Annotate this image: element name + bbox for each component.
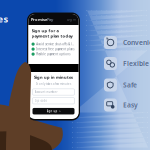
staticText: It only takes a few minutes xyxy=(36,82,71,86)
button[interactable]: Easy xyxy=(104,98,150,112)
staticText: Sign up in minutes xyxy=(34,74,73,80)
button[interactable]: Log in xyxy=(67,18,76,21)
staticText: Promise xyxy=(31,17,47,22)
staticText: Account number xyxy=(34,90,57,94)
staticText: Pay xyxy=(47,17,53,22)
staticText: es xyxy=(0,13,8,25)
staticText: Sign up for a xyxy=(31,28,58,33)
button[interactable]: Convenient xyxy=(104,35,150,49)
staticText: Zip code xyxy=(34,99,47,102)
staticText: Interest free payment plans xyxy=(36,47,74,51)
staticText: Flexible payment options xyxy=(36,52,70,56)
button[interactable]: Flexible xyxy=(104,56,150,70)
staticText: Safe xyxy=(123,81,137,89)
staticText: Log in xyxy=(67,18,76,21)
button[interactable]: Sign up › xyxy=(32,108,74,114)
staticText: payment plan today xyxy=(31,33,72,39)
button[interactable]: Safe xyxy=(104,78,150,92)
staticText: Sign up › xyxy=(46,109,60,113)
staticText: Flexible xyxy=(123,59,149,68)
staticText: Avoid service shut-offs & late fees xyxy=(36,42,74,46)
staticText: Easy xyxy=(123,101,138,109)
staticText: Convenient xyxy=(123,38,150,47)
